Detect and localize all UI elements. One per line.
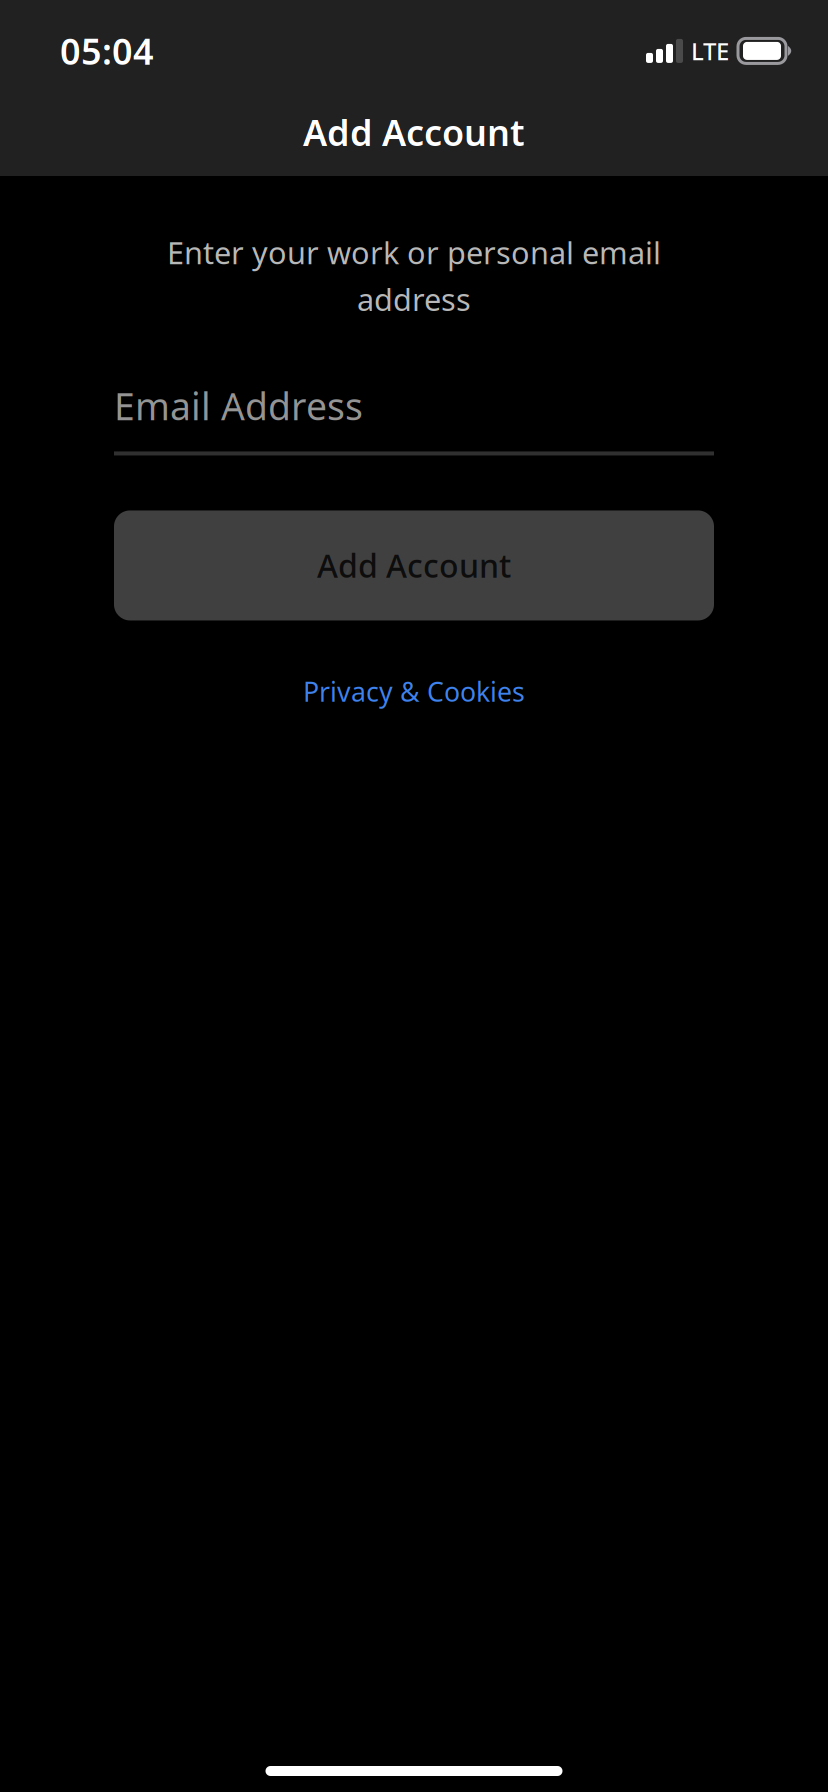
button[interactable]: Add Account <box>114 510 714 620</box>
staticText: address <box>357 279 471 319</box>
button[interactable]: Email Address <box>114 375 714 455</box>
staticText: Email Address <box>114 381 363 430</box>
button[interactable]: Privacy & Cookies <box>279 669 549 713</box>
staticText: LTE <box>691 35 729 67</box>
staticText: 05:04 <box>60 27 154 75</box>
staticText: Enter your work or personal email <box>167 232 661 273</box>
staticText: Add Account <box>317 544 511 587</box>
staticText: Add Account <box>303 108 525 156</box>
staticText: Privacy & Cookies <box>303 674 525 709</box>
